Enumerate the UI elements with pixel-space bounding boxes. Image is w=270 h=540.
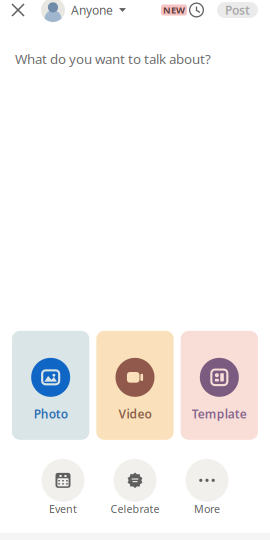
button[interactable]: Event <box>27 459 99 516</box>
button[interactable]: Anyone <box>41 0 126 22</box>
staticText: Post <box>225 2 250 18</box>
button[interactable]: Close <box>6 0 30 22</box>
button[interactable]: Schedule post <box>189 2 204 17</box>
button[interactable]: Video <box>96 331 174 440</box>
staticText: Photo <box>34 406 68 422</box>
button[interactable]: Template <box>181 331 258 440</box>
staticText: Template <box>192 406 247 422</box>
staticText: Anyone <box>71 2 113 18</box>
staticText: NEW <box>163 4 185 16</box>
button[interactable]: More <box>171 459 243 516</box>
staticText: Video <box>118 406 151 422</box>
button[interactable]: Celebrate <box>99 459 171 516</box>
button[interactable]: Photo <box>12 331 89 440</box>
staticText: What do you want to talk about? <box>15 50 211 68</box>
button[interactable]: Post <box>217 2 258 18</box>
staticText: Event <box>49 502 77 516</box>
staticText: Celebrate <box>110 502 159 516</box>
staticText: More <box>194 502 220 516</box>
